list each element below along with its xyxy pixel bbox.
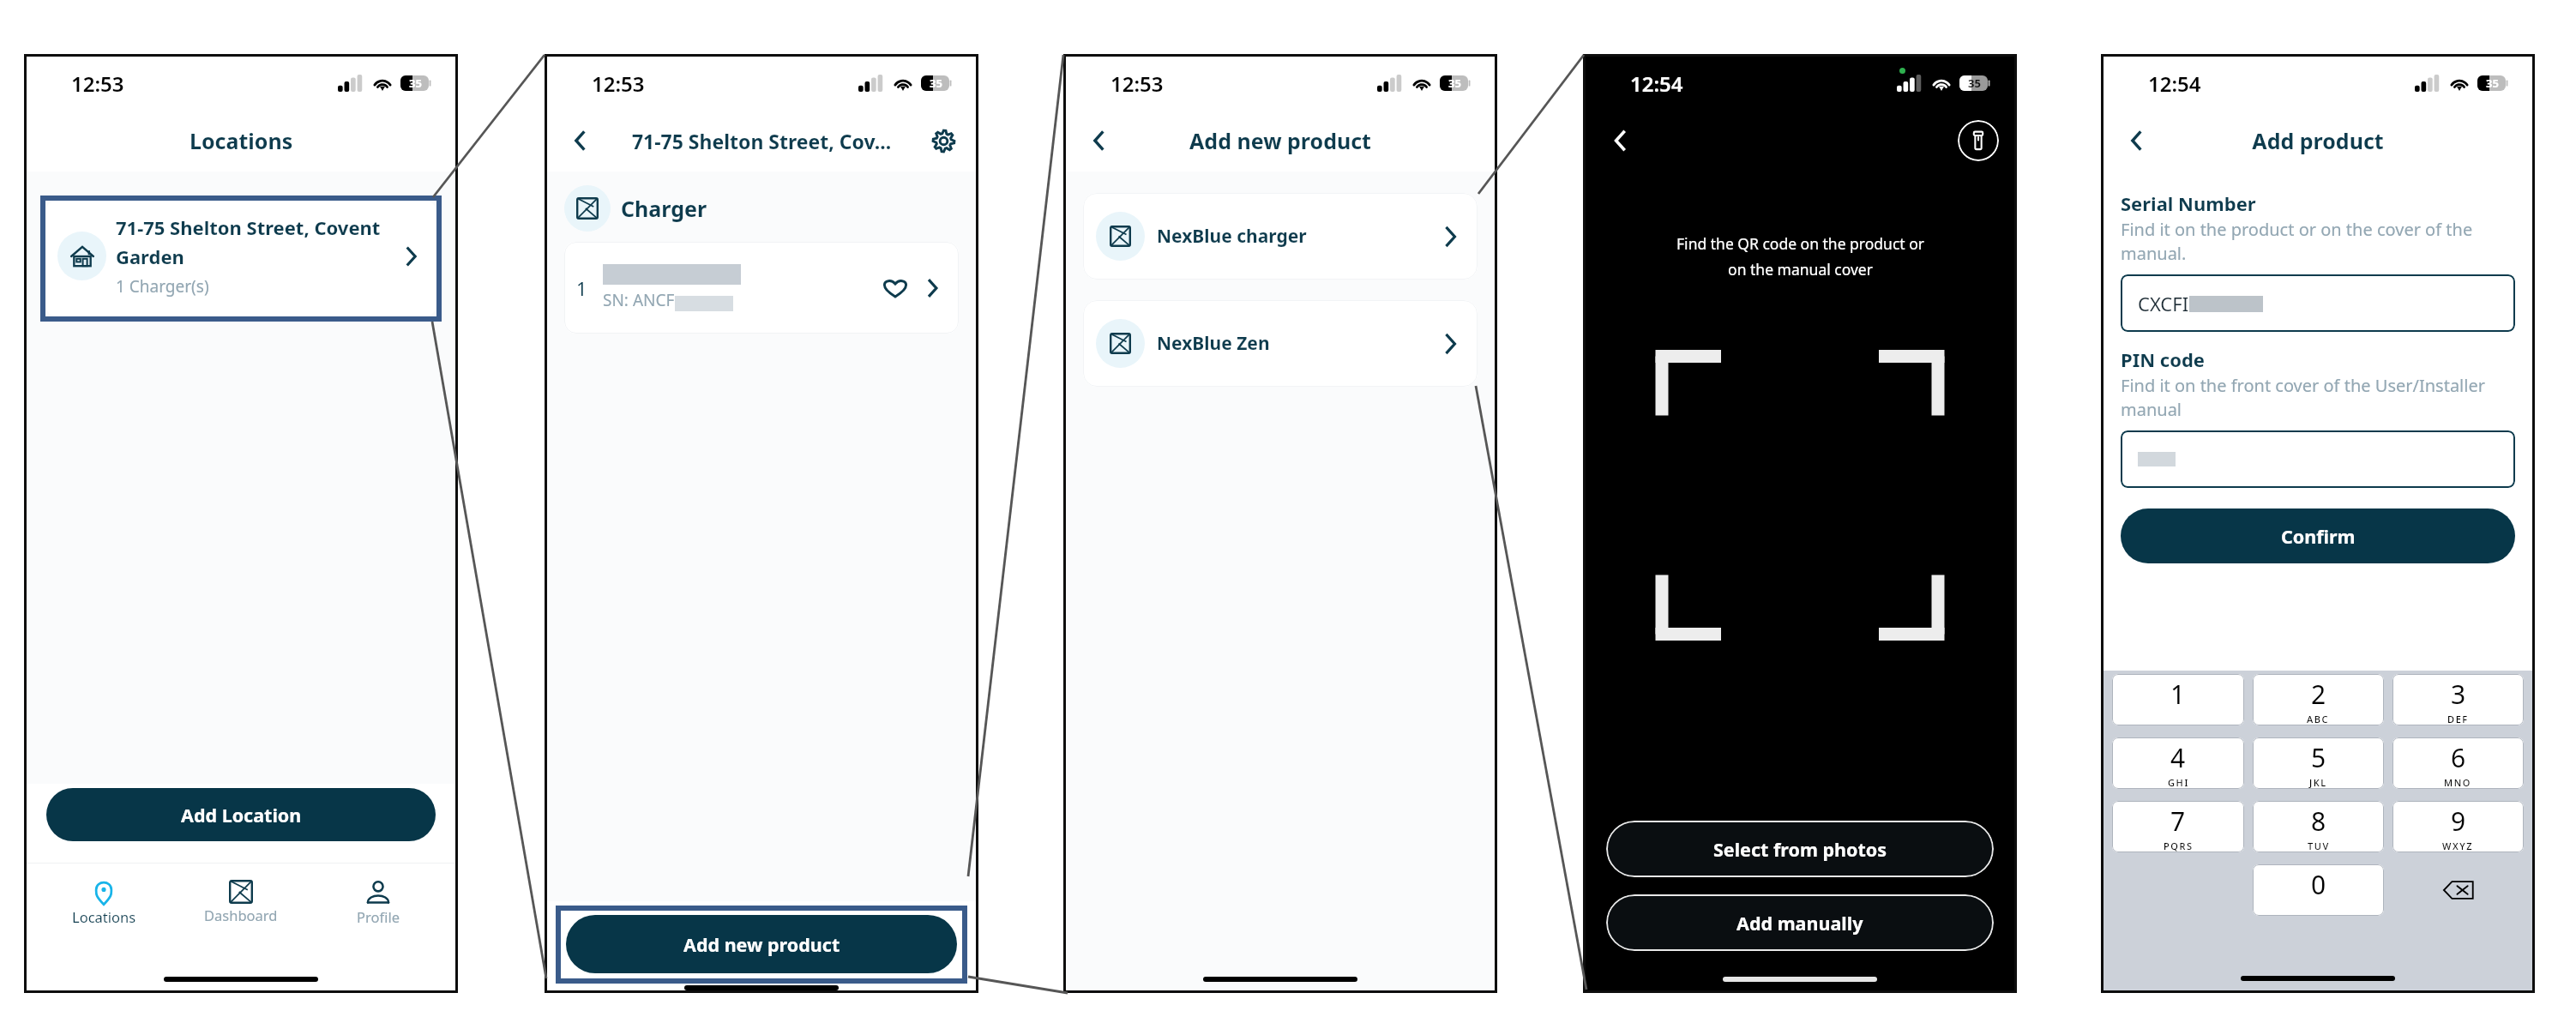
staticText: 12:54 bbox=[1630, 69, 1683, 98]
staticText: 35 bbox=[1448, 75, 1461, 91]
staticText: 2 bbox=[2311, 677, 2326, 712]
staticText: 12:53 bbox=[592, 69, 645, 98]
staticText: GHI bbox=[2168, 776, 2189, 789]
staticText: Add new product bbox=[1117, 126, 1443, 155]
button[interactable]: 71-75 Shelton Street, Covent Garden bbox=[45, 201, 436, 316]
staticText: PQRS bbox=[2164, 839, 2194, 852]
staticText: Find it on the product or on the cover o… bbox=[2121, 218, 2515, 265]
staticText: 0 bbox=[2311, 867, 2326, 902]
staticText: JKL bbox=[2309, 776, 2327, 789]
button[interactable]: Back bbox=[2117, 122, 2155, 159]
staticText: NexBlue Zen bbox=[1157, 331, 1437, 356]
staticText: 71-75 Shelton Street, Covent Garden bbox=[116, 214, 394, 269]
staticText: Find the QR code on the product or on th… bbox=[1676, 233, 1924, 280]
staticText: Locations bbox=[72, 907, 136, 926]
button[interactable]: 1 bbox=[564, 242, 959, 334]
staticText: Profile bbox=[357, 907, 400, 926]
button[interactable]: 3 bbox=[2392, 674, 2524, 725]
staticText: Add product bbox=[2155, 126, 2481, 155]
staticText: 71-75 Shelton Street, Cov... bbox=[599, 128, 924, 154]
button[interactable]: Back bbox=[561, 122, 599, 159]
staticText: Locations bbox=[190, 126, 293, 155]
staticText: 12:53 bbox=[71, 69, 124, 98]
button[interactable]: 0 bbox=[2253, 864, 2384, 916]
button[interactable]: NexBlue charger bbox=[1083, 193, 1478, 280]
staticText: 1 bbox=[2170, 677, 2186, 712]
button[interactable]: 2 bbox=[2253, 674, 2384, 725]
staticText: 5 bbox=[2311, 740, 2326, 775]
button[interactable]: Add Location bbox=[46, 788, 436, 841]
staticText: Confirm bbox=[2281, 524, 2356, 549]
button[interactable]: 9 bbox=[2392, 801, 2524, 852]
button[interactable]: CXCFI bbox=[2121, 274, 2515, 332]
button[interactable]: 7 bbox=[2112, 801, 2244, 852]
staticText: 1 bbox=[576, 275, 587, 301]
staticText: 35 bbox=[1968, 75, 1981, 91]
button[interactable]: 8 bbox=[2253, 801, 2384, 852]
button[interactable]: 6 bbox=[2392, 737, 2524, 789]
staticText: 3 bbox=[2451, 677, 2466, 712]
staticText: 1 Charger(s) bbox=[116, 275, 209, 298]
staticText: 12:53 bbox=[1110, 69, 1164, 98]
staticText: 12:54 bbox=[2148, 69, 2201, 98]
staticText: 8 bbox=[2311, 803, 2326, 839]
button[interactable]: NexBlue Zen bbox=[1083, 300, 1478, 387]
staticText: ABC bbox=[2307, 713, 2330, 725]
button[interactable]: Select from photos bbox=[1606, 821, 1994, 877]
staticText: 9 bbox=[2451, 803, 2466, 839]
button[interactable]: 5 bbox=[2253, 737, 2384, 789]
button[interactable]: Back bbox=[1080, 122, 1117, 159]
button[interactable] bbox=[2121, 430, 2515, 488]
staticText: 4 bbox=[2170, 740, 2186, 775]
button[interactable]: Add new product bbox=[566, 915, 957, 973]
staticText: 35 bbox=[2486, 75, 2499, 91]
staticText: 35 bbox=[930, 75, 942, 91]
staticText: DEF bbox=[2447, 713, 2469, 725]
staticText: CXCFI bbox=[2138, 291, 2189, 316]
button[interactable]: Settings bbox=[924, 122, 962, 159]
staticText: Add new product bbox=[683, 932, 840, 957]
staticText: Add Location bbox=[181, 803, 302, 827]
staticText: WXYZ bbox=[2442, 839, 2474, 852]
button[interactable]: Torch bbox=[1958, 120, 1999, 161]
staticText: MNO bbox=[2444, 776, 2472, 789]
staticText: Charger bbox=[621, 194, 707, 223]
button[interactable]: Dashboard bbox=[172, 864, 310, 941]
staticText: SN: ANCF bbox=[603, 289, 675, 311]
button[interactable]: Backspace bbox=[2388, 864, 2528, 916]
staticText: Dashboard bbox=[204, 906, 278, 924]
button[interactable]: Locations bbox=[35, 864, 172, 941]
staticText: Find it on the front cover of the User/I… bbox=[2121, 374, 2515, 421]
staticText: Serial Number bbox=[2121, 190, 2256, 216]
button[interactable]: Profile bbox=[310, 864, 447, 941]
staticText: TUV bbox=[2308, 839, 2330, 852]
staticText: 7 bbox=[2170, 803, 2186, 839]
staticText: PIN code bbox=[2121, 346, 2205, 372]
button[interactable]: Confirm bbox=[2121, 508, 2515, 563]
button[interactable]: 1 bbox=[2112, 674, 2244, 725]
staticText: Select from photos bbox=[1713, 837, 1887, 862]
button[interactable]: Add manually bbox=[1606, 894, 1994, 951]
staticText: NexBlue charger bbox=[1157, 224, 1437, 249]
button[interactable]: Back bbox=[1601, 122, 1639, 159]
staticText: 35 bbox=[409, 75, 422, 91]
button[interactable]: 4 bbox=[2112, 737, 2244, 789]
staticText: Add manually bbox=[1736, 911, 1863, 936]
staticText: 6 bbox=[2451, 740, 2466, 775]
